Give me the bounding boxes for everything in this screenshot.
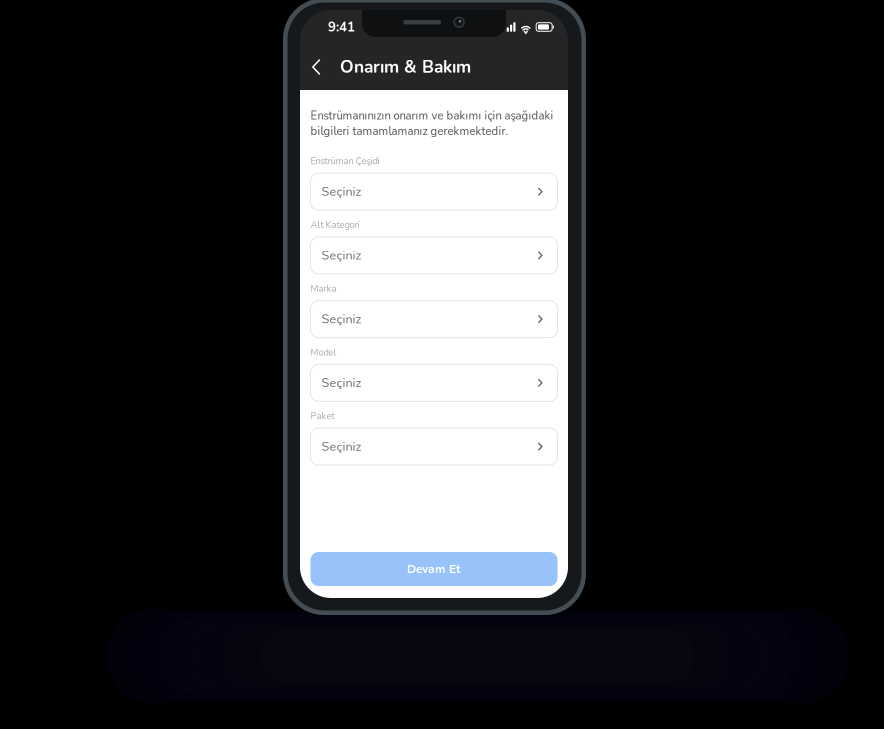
staticText: Seçiniz (321, 183, 361, 200)
staticText: Model (310, 346, 336, 359)
staticText: Seçiniz (321, 247, 361, 264)
staticText: 9:41 (328, 18, 355, 36)
staticText: Paket (310, 410, 334, 422)
staticText: Devam Et (407, 561, 461, 577)
staticText: Marka (310, 282, 336, 295)
staticText: Enstrüman Çeşidi (310, 155, 379, 168)
button[interactable]: Seçiniz (310, 173, 557, 210)
staticText: Seçiniz (321, 374, 361, 391)
staticText: Seçiniz (321, 311, 361, 328)
button[interactable]: Seçiniz (310, 428, 557, 465)
staticText: Onarım & Bakım (340, 55, 471, 79)
staticText: Seçiniz (321, 438, 361, 455)
button[interactable]: Seçiniz (310, 301, 557, 338)
staticText: Enstrümanınızın onarım ve bakımı için aş… (310, 108, 553, 139)
button[interactable]: Seçiniz (310, 364, 557, 401)
staticText: Alt Kategori (310, 219, 359, 231)
button[interactable]: Back (312, 51, 340, 83)
button[interactable]: Devam Et (310, 552, 557, 586)
button[interactable]: Seçiniz (310, 237, 557, 274)
